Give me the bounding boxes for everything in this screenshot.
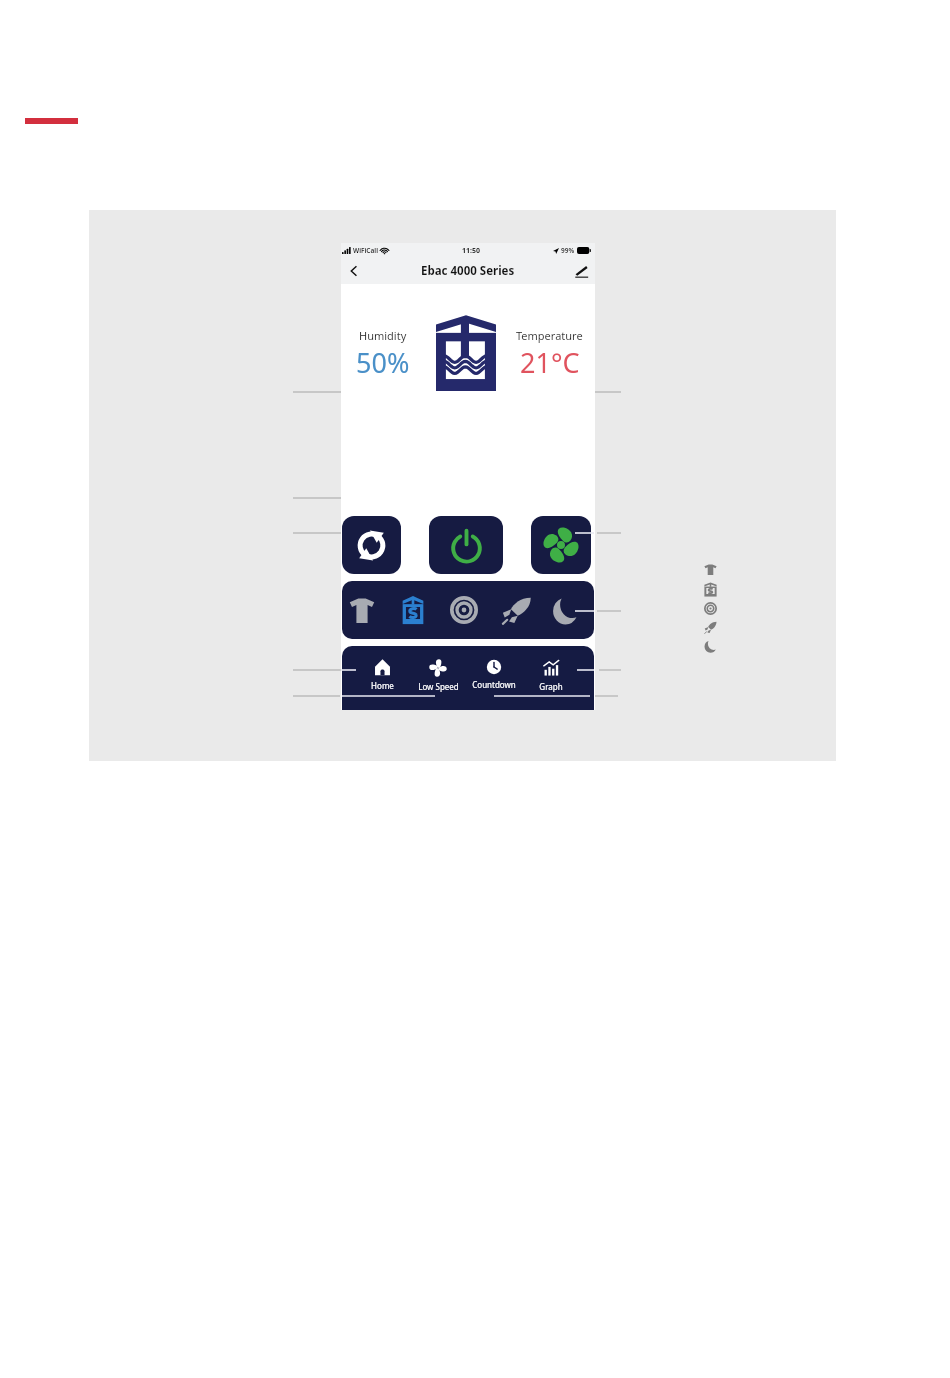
button[interactable]: Fan speed	[531, 516, 591, 574]
staticText: Humidity	[359, 328, 407, 343]
staticText: Ebac 4000 Series	[421, 263, 515, 279]
staticText: Temperature	[516, 328, 583, 343]
staticText: 99%	[561, 246, 575, 255]
button[interactable]: Power	[429, 516, 503, 574]
button[interactable]: Countdown	[466, 659, 522, 690]
button[interactable]: Back	[346, 263, 362, 279]
button[interactable]: Home	[354, 659, 410, 691]
staticText: 50%	[356, 344, 410, 381]
button[interactable]: Smart mode	[391, 581, 434, 639]
button[interactable]: Edit	[575, 264, 589, 278]
staticText: Home	[371, 680, 394, 691]
staticText: 21°C	[520, 344, 580, 381]
button[interactable]: Turbo mode	[495, 581, 538, 639]
button[interactable]: Boost mode	[342, 516, 401, 574]
staticText: 11:50	[462, 246, 480, 256]
button[interactable]: Graph	[523, 659, 579, 692]
button[interactable]: Target mode	[442, 581, 485, 639]
staticText: WiFiCall	[353, 246, 378, 255]
staticText: Low Speed	[418, 681, 459, 692]
staticText: Graph	[539, 681, 563, 692]
button[interactable]: Night mode	[544, 581, 587, 639]
button[interactable]: Low Speed	[410, 659, 466, 692]
staticText: Countdown	[472, 679, 516, 690]
button[interactable]: Laundry mode	[342, 581, 383, 639]
